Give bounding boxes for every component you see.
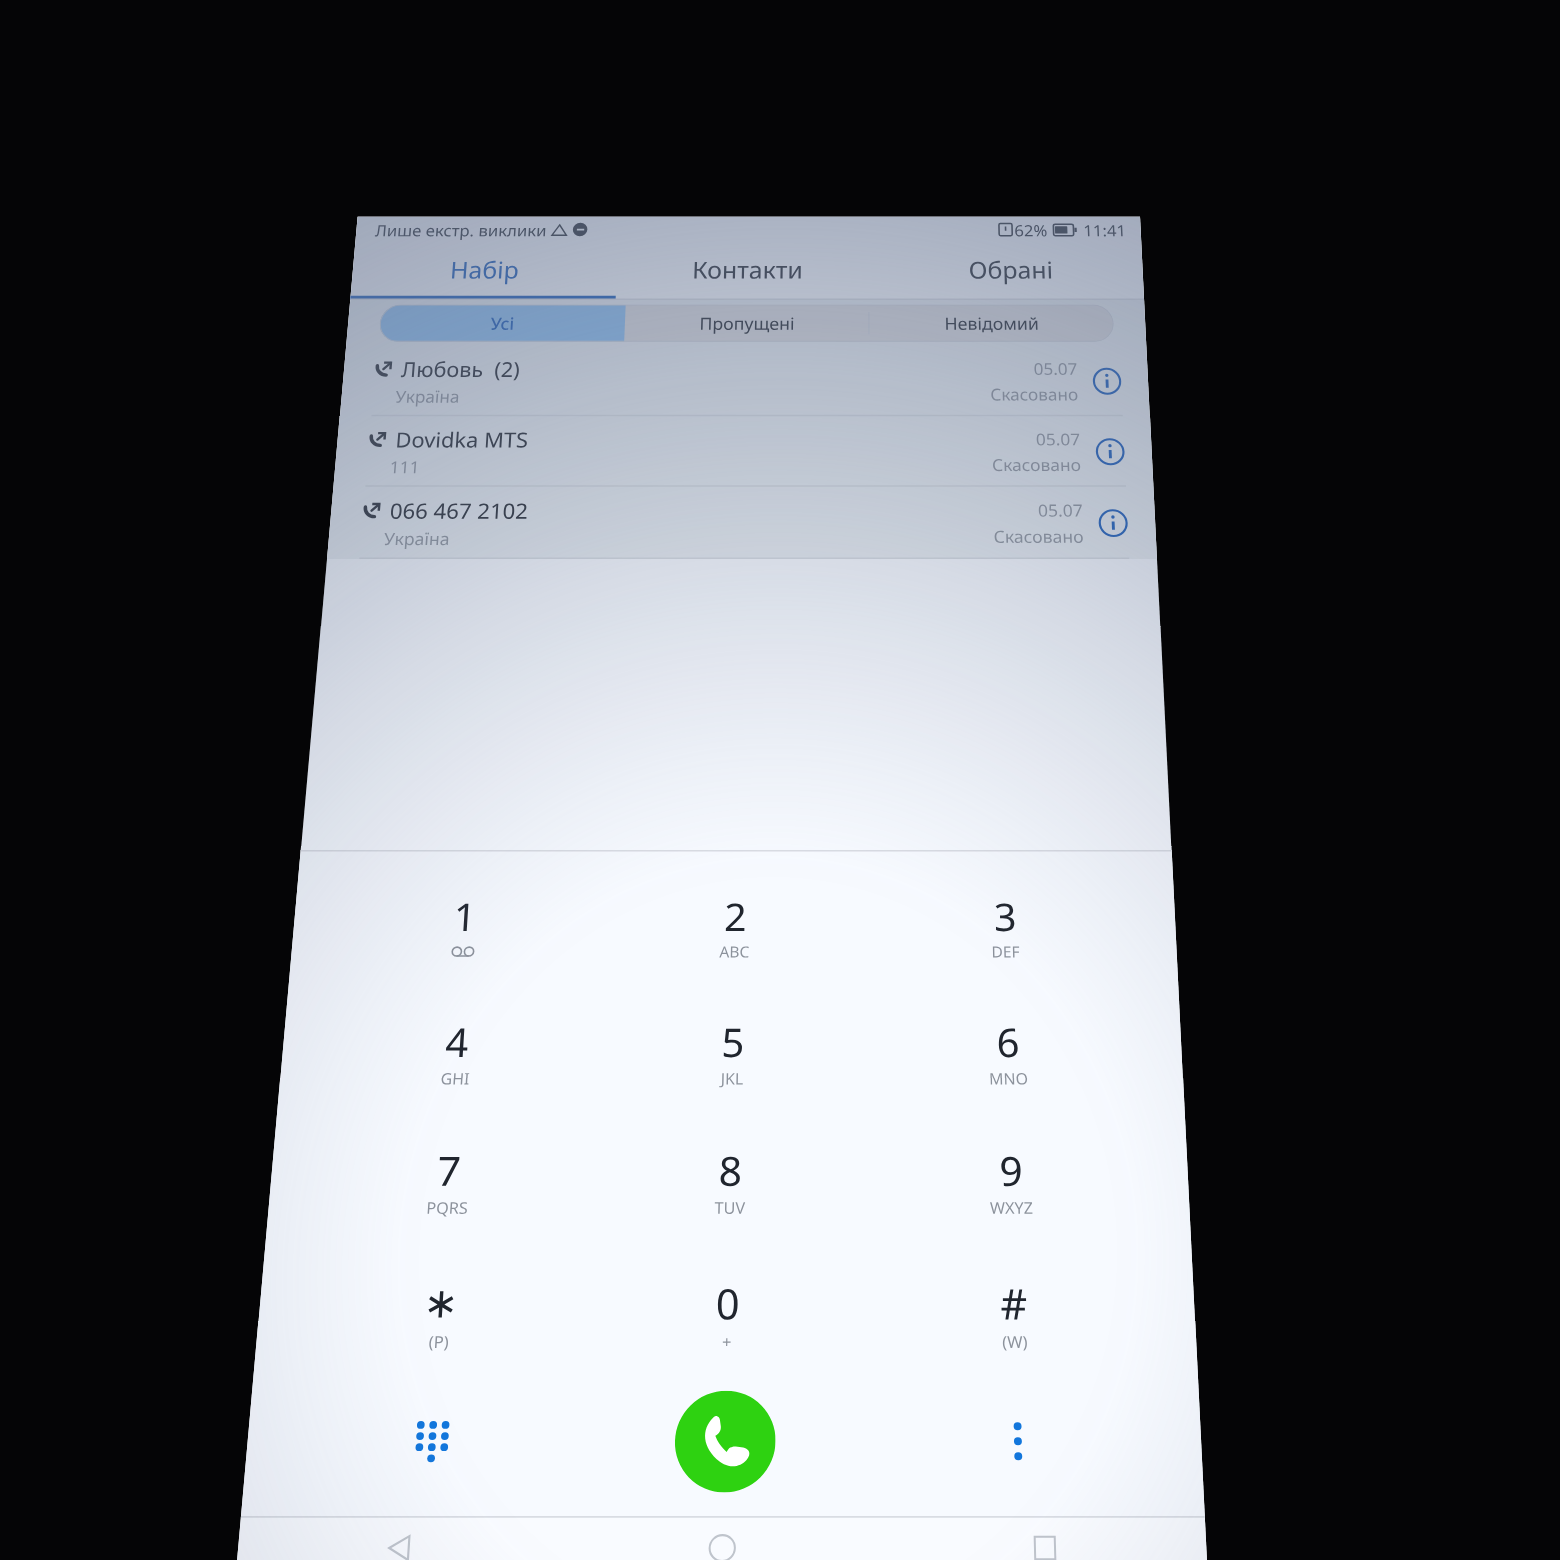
button[interactable]: ∗ bbox=[43, 1336, 375, 1491]
button[interactable]: # bbox=[706, 1336, 1037, 1491]
button[interactable]: Call details bbox=[1006, 417, 1044, 455]
button[interactable]: 5 bbox=[375, 1026, 706, 1181]
button[interactable]: 1 bbox=[43, 871, 375, 1026]
button[interactable]: 0 bbox=[375, 1336, 706, 1491]
button[interactable]: 066 467 2102 bbox=[0, 386, 1080, 485]
button[interactable]: Dovidka MTS bbox=[0, 287, 1080, 386]
button[interactable]: 3 bbox=[706, 871, 1037, 1026]
button[interactable]: Call details bbox=[1006, 318, 1044, 356]
button[interactable]: Любовь (2) bbox=[0, 188, 1080, 287]
button[interactable]: 7 bbox=[43, 1181, 375, 1336]
staticText: 05.07 bbox=[927, 303, 986, 334]
button[interactable]: Call bbox=[484, 1517, 598, 1560]
button[interactable]: Call details bbox=[1006, 219, 1044, 257]
button[interactable]: 2 bbox=[375, 871, 706, 1026]
button[interactable]: 9 bbox=[706, 1181, 1037, 1336]
button[interactable]: 4 bbox=[43, 1026, 375, 1181]
staticText: Скасовано bbox=[868, 240, 986, 271]
staticText: 05.07 bbox=[927, 204, 986, 235]
button[interactable]: Keypad bbox=[174, 1539, 244, 1560]
staticText: Скасовано bbox=[868, 339, 986, 370]
button[interactable]: 8 bbox=[375, 1181, 706, 1336]
button[interactable]: 6 bbox=[706, 1026, 1037, 1181]
